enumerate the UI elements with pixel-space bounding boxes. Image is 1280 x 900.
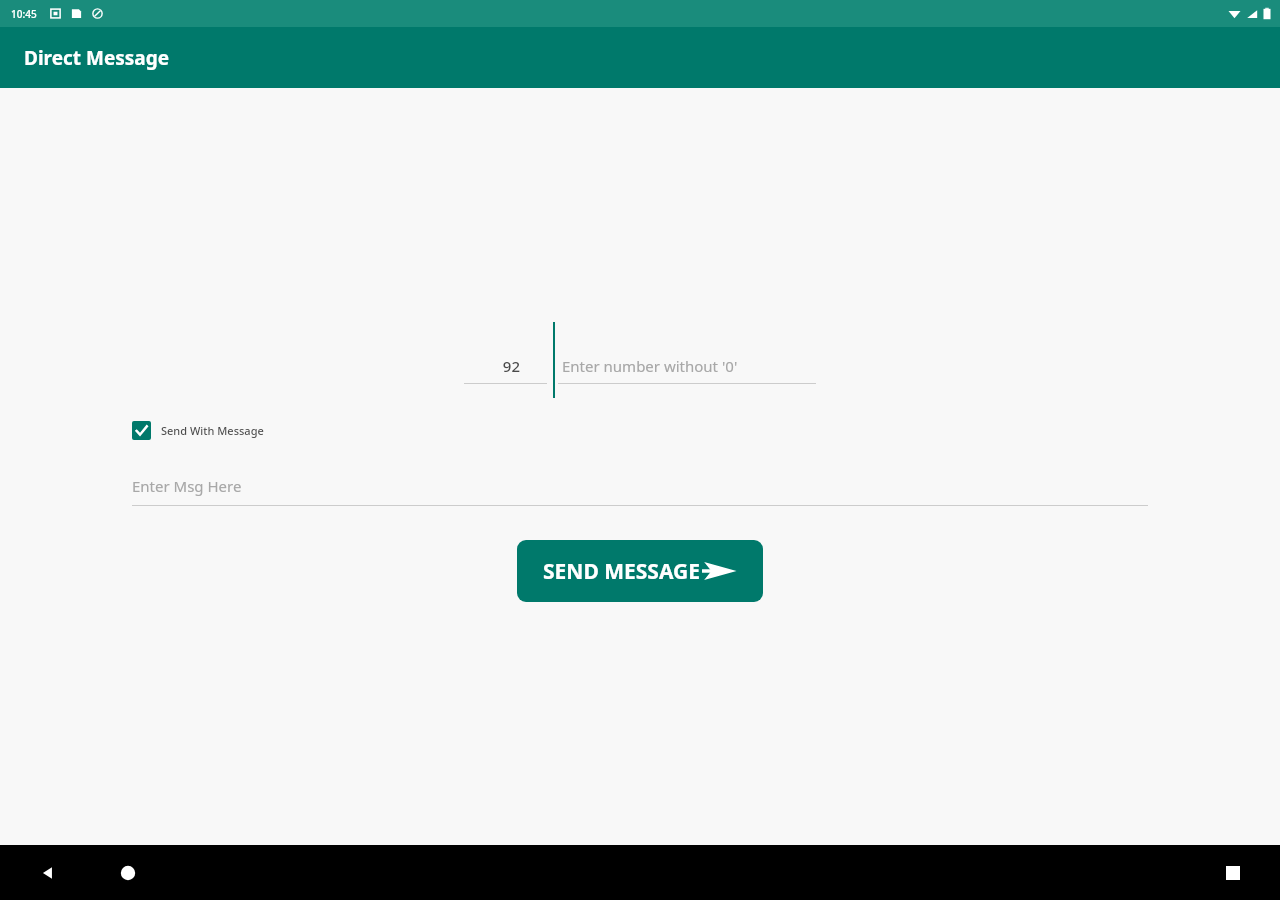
button[interactable]: Recent apps — [1215, 855, 1251, 891]
button[interactable]: Enter Msg Here — [132, 459, 1148, 506]
staticText: Enter number without '0' — [562, 356, 738, 376]
staticText: SEND MESSAGE — [543, 557, 701, 586]
staticText: 92 — [502, 356, 520, 376]
staticText: 10:45 — [11, 7, 37, 21]
button[interactable]: Home — [110, 855, 146, 891]
button[interactable]: Back — [30, 855, 66, 891]
staticText: Direct Message — [24, 45, 170, 71]
button[interactable]: Enter number without '0' — [558, 336, 816, 384]
button[interactable]: SEND MESSAGE — [517, 540, 763, 602]
button[interactable]: Send With Message — [132, 416, 264, 444]
staticText: Send With Message — [161, 423, 264, 438]
button[interactable]: 92 — [464, 336, 547, 384]
staticText: Enter Msg Here — [132, 476, 242, 496]
